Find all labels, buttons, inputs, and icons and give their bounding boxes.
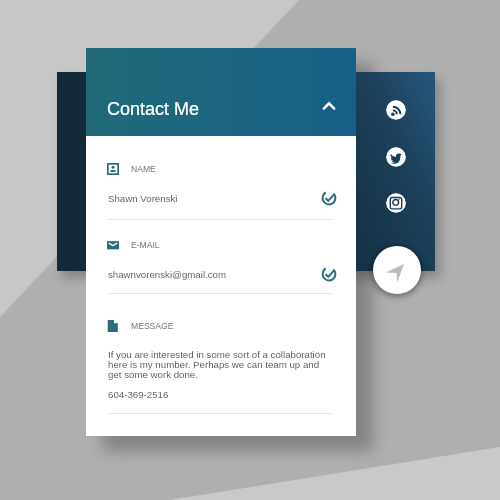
button[interactable]: Shawn Vorenski — [108, 189, 337, 207]
button[interactable]: Instagram — [386, 193, 406, 213]
button[interactable]: Contact Me — [86, 48, 356, 136]
button[interactable]: Twitter — [386, 147, 406, 167]
staticText: Shawn Vorenski — [108, 193, 321, 204]
staticText: Contact Me — [107, 99, 200, 119]
button[interactable]: RSS feed — [386, 100, 406, 120]
button[interactable]: shawnvorenski@gmail.com — [108, 265, 337, 283]
staticText: 604-369-2516 — [108, 389, 169, 400]
staticText: If you are interested in some sort of a … — [108, 349, 328, 380]
staticText: shawnvorenski@gmail.com — [108, 269, 321, 280]
staticText: MESSAGE — [131, 321, 174, 331]
button[interactable]: Send message — [373, 246, 421, 294]
staticText: E-MAIL — [131, 240, 160, 250]
staticText: NAME — [131, 164, 156, 174]
